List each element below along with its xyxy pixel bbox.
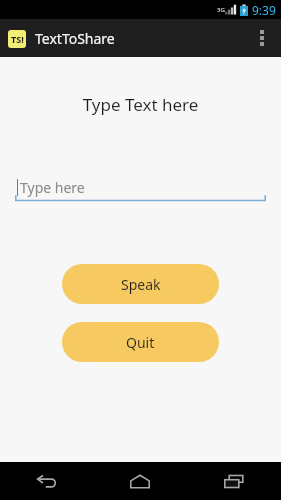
button[interactable]: Back (0, 462, 93, 500)
button[interactable]: Quit (62, 322, 219, 362)
staticText: Quit (126, 333, 155, 352)
button[interactable]: Speak (62, 264, 219, 304)
staticText: Type Text here (0, 93, 281, 116)
staticText: TextToShare (35, 29, 115, 48)
button[interactable]: Recent apps (187, 462, 281, 500)
staticText: Speak (121, 275, 161, 294)
staticText: 9:39 (252, 2, 276, 18)
staticText: 3G (217, 6, 225, 14)
staticText: TS! (11, 33, 24, 45)
button[interactable]: Type here (15, 172, 266, 202)
staticText: Type here (20, 178, 85, 197)
button[interactable]: Home (93, 462, 187, 500)
button[interactable]: More options (242, 19, 281, 57)
